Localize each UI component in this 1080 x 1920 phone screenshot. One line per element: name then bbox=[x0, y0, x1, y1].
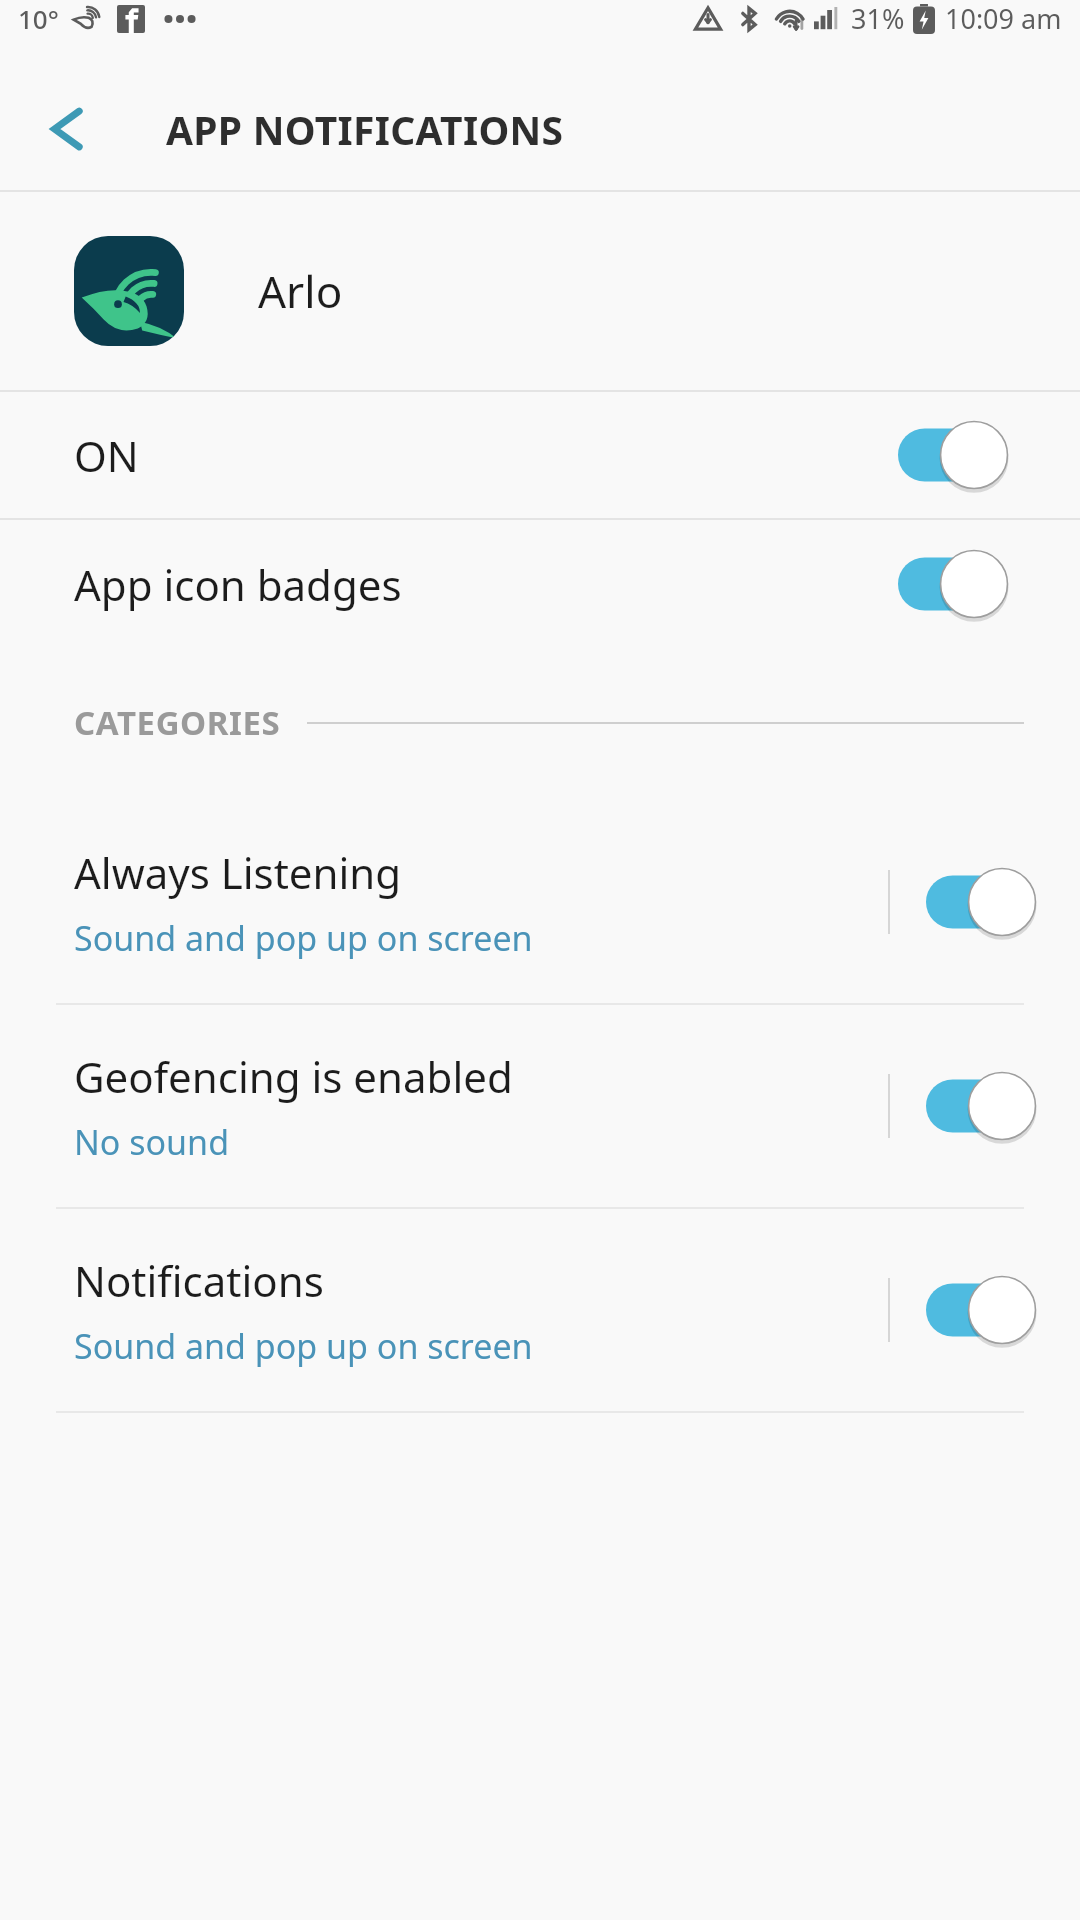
button[interactable] bbox=[926, 1272, 1044, 1348]
staticText: 10° bbox=[18, 1, 59, 36]
button[interactable]: Notifications bbox=[0, 1209, 1080, 1411]
staticText: Always Listening bbox=[74, 844, 402, 901]
button[interactable]: Always Listening bbox=[0, 801, 1080, 1003]
button[interactable] bbox=[926, 1068, 1044, 1144]
staticText: Notifications bbox=[74, 1252, 324, 1309]
staticText: CATEGORIES bbox=[74, 700, 281, 745]
button[interactable]: Notifications toggle bbox=[890, 1272, 1080, 1348]
button[interactable]: App icon badges bbox=[0, 520, 1080, 648]
staticText: ON bbox=[74, 427, 139, 484]
staticText: No sound bbox=[74, 1119, 230, 1165]
staticText: Arlo bbox=[258, 261, 343, 321]
staticText: Sound and pop up on screen bbox=[74, 915, 533, 961]
staticText: 31% bbox=[851, 0, 905, 37]
button[interactable] bbox=[898, 417, 1016, 493]
button[interactable]: Always Listening toggle bbox=[890, 864, 1080, 940]
staticText: App icon badges bbox=[74, 556, 402, 613]
staticText: 10:09 am bbox=[945, 0, 1062, 37]
staticText: Sound and pop up on screen bbox=[74, 1323, 533, 1369]
button[interactable]: ON bbox=[0, 392, 1080, 518]
button[interactable]: Geofencing is enabled bbox=[0, 1005, 1080, 1207]
button[interactable] bbox=[926, 864, 1044, 940]
staticText: APP NOTIFICATIONS bbox=[166, 103, 564, 156]
button[interactable]: Geofencing is enabled toggle bbox=[890, 1068, 1080, 1144]
staticText: Geofencing is enabled bbox=[74, 1048, 513, 1105]
button[interactable]: Arlo bbox=[0, 192, 1080, 390]
button[interactable]: Back bbox=[40, 101, 96, 157]
button[interactable] bbox=[898, 546, 1016, 622]
